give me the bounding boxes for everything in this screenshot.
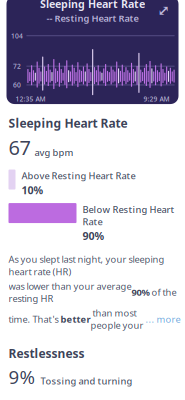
staticText: As you slept last night, your sleeping h… xyxy=(8,253,164,278)
button[interactable]: Expand chart xyxy=(155,3,171,19)
staticText: was lower than your average resting HR xyxy=(8,280,131,305)
staticText: Tossing and turning xyxy=(40,375,132,387)
staticText: ⤢ xyxy=(157,2,169,19)
staticText: Restlessness xyxy=(8,345,84,361)
staticText: 12:35 AM xyxy=(15,94,45,103)
staticText: time. That's xyxy=(8,313,60,325)
staticText: Sleeping Heart Rate xyxy=(8,115,127,131)
staticText: 10% xyxy=(21,183,43,197)
staticText: 9:29 AM xyxy=(143,94,169,103)
staticText: 90% xyxy=(131,286,149,298)
staticText: than most people your xyxy=(90,307,145,331)
button[interactable]: ... more xyxy=(145,313,180,325)
staticText: of the xyxy=(149,286,176,298)
staticText: avg bpm xyxy=(34,146,73,158)
staticText: 72 xyxy=(13,62,21,71)
staticText: ... more xyxy=(145,313,180,325)
staticText: 104 xyxy=(11,31,23,40)
staticText: 90% xyxy=(82,229,104,243)
staticText: 67 xyxy=(8,134,30,161)
staticText: better xyxy=(60,313,90,325)
staticText: -- Resting Heart Rate xyxy=(46,12,138,24)
staticText: 60 xyxy=(13,80,21,89)
staticText: 9% xyxy=(8,364,35,389)
staticText: Above Resting Heart Rate xyxy=(21,169,135,182)
staticText: Below Resting Heart Rate xyxy=(82,203,174,228)
staticText: Sleeping Heart Rate xyxy=(40,0,145,11)
